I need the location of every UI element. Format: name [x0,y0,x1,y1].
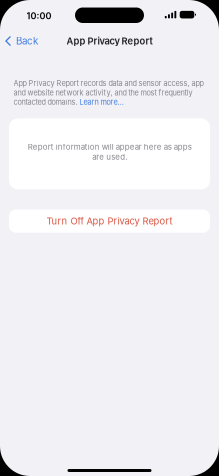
staticText: and website network activity, and the mo… [13,88,192,97]
staticText: Back [16,35,38,47]
staticText: Turn Off App Privacy Report [46,215,172,227]
button[interactable]: Back [0,30,44,52]
staticText: 10:00 [26,10,51,21]
button[interactable]: Turn Off App Privacy Report [9,209,210,233]
staticText: Report information will appear here as a… [27,142,191,161]
staticText: App Privacy Report [66,35,152,47]
staticText: contacted domains. [13,97,79,106]
staticText: App Privacy Report records data and sens… [13,79,203,88]
staticText: Learn more… [79,97,123,106]
button[interactable]: Learn more… [79,97,123,106]
